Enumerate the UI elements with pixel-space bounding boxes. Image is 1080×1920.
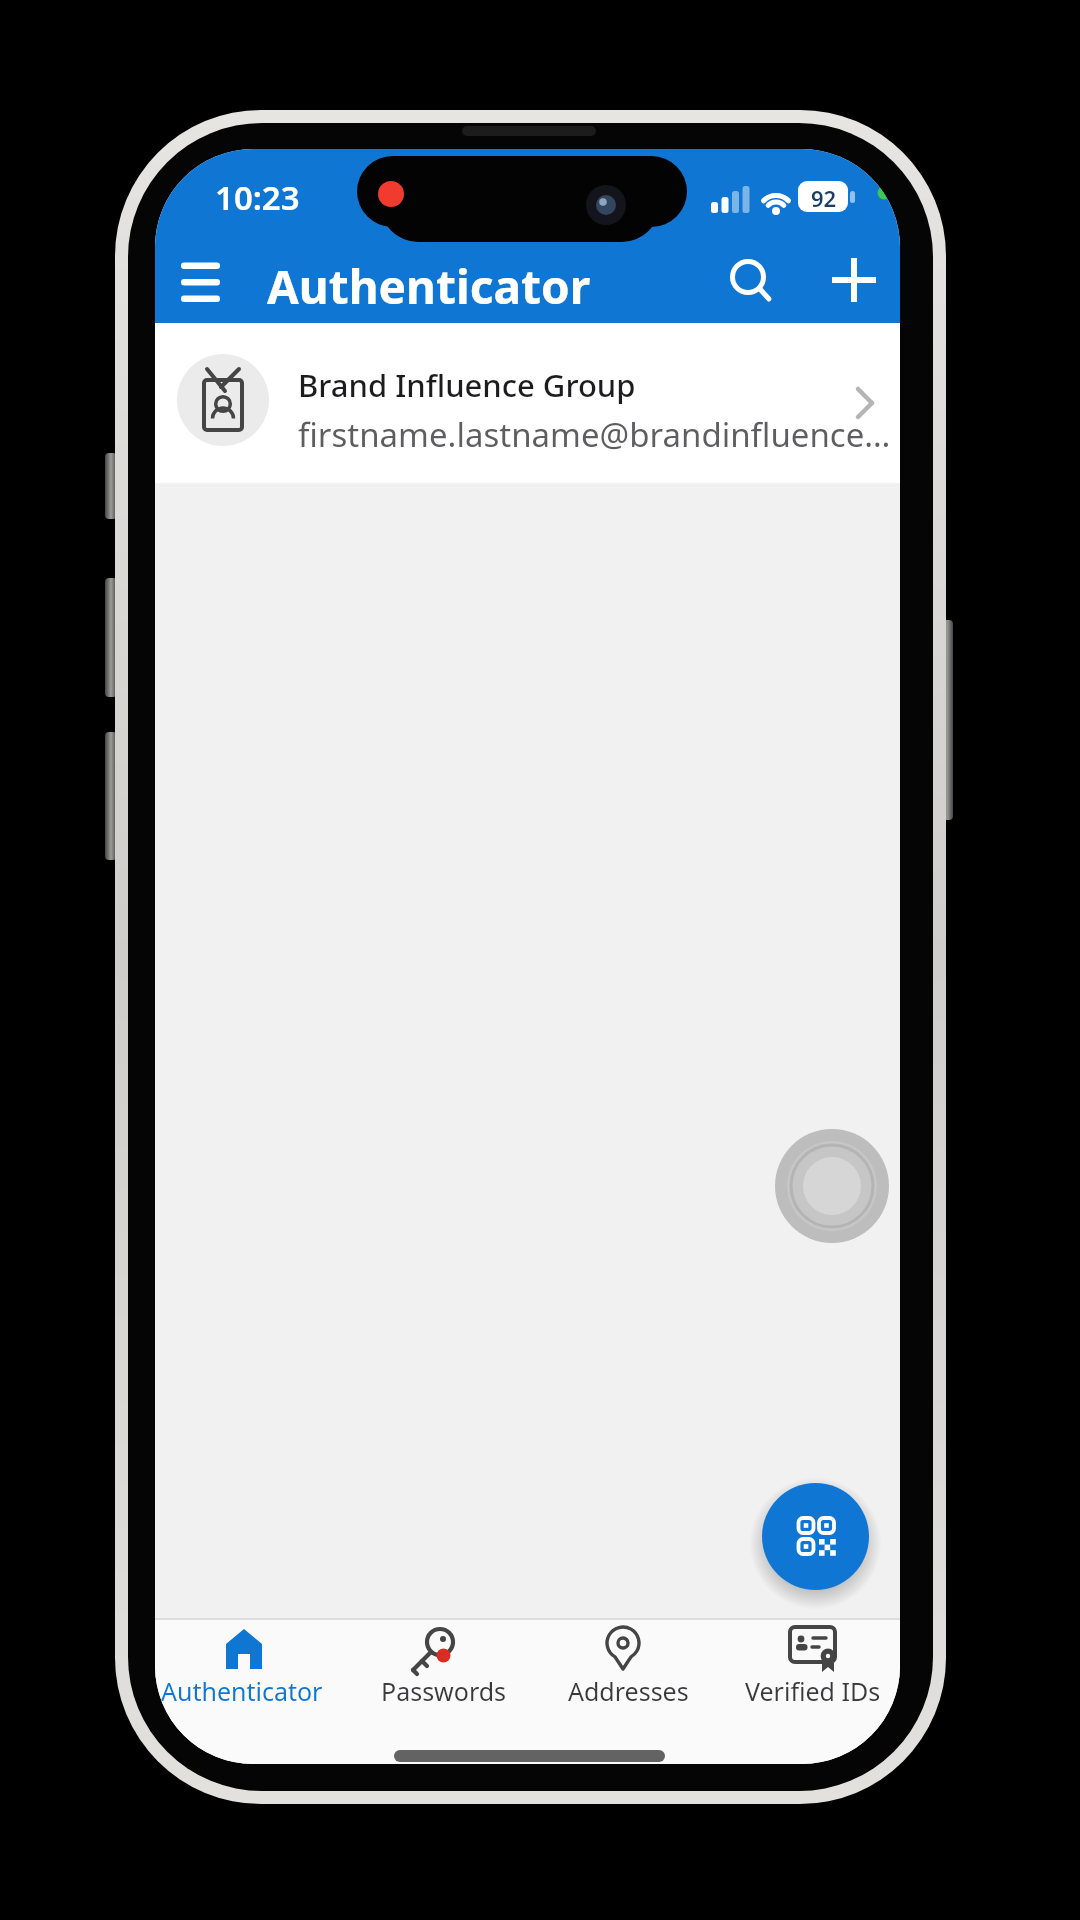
button[interactable] [355, 1620, 515, 1730]
staticText: Authenticator [267, 255, 591, 318]
staticText: Verified IDs [745, 1674, 881, 1708]
button[interactable] [819, 245, 889, 315]
staticText: 10:23 [215, 175, 300, 220]
staticText: firstname.lastname@brandinfluence… [298, 412, 891, 457]
button[interactable] [715, 245, 785, 315]
button[interactable] [155, 323, 900, 483]
staticText: Authenticator [161, 1674, 323, 1708]
staticText: Passwords [381, 1674, 507, 1708]
button[interactable] [762, 1483, 869, 1590]
button[interactable] [542, 1620, 702, 1730]
button[interactable] [733, 1620, 893, 1730]
staticText: Addresses [568, 1674, 689, 1708]
staticText: 92 [811, 183, 837, 213]
button[interactable] [165, 246, 235, 316]
button[interactable] [163, 1620, 323, 1730]
staticText: Brand Influence Group [298, 364, 636, 406]
